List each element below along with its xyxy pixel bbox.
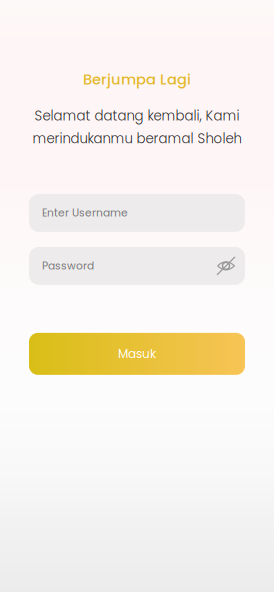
button[interactable]: Masuk: [29, 333, 245, 375]
staticText: Masuk: [118, 345, 156, 362]
staticText: Enter Username: [42, 205, 128, 220]
staticText: Password: [42, 258, 94, 273]
staticText: Selamat datang kembali, Kami: [34, 106, 239, 125]
staticText: merindukanmu beramal Sholeh: [32, 129, 241, 148]
button[interactable]: Password: [29, 247, 245, 285]
staticText: Berjumpa Lagi: [83, 69, 191, 89]
button[interactable]: Enter Username: [29, 194, 245, 232]
